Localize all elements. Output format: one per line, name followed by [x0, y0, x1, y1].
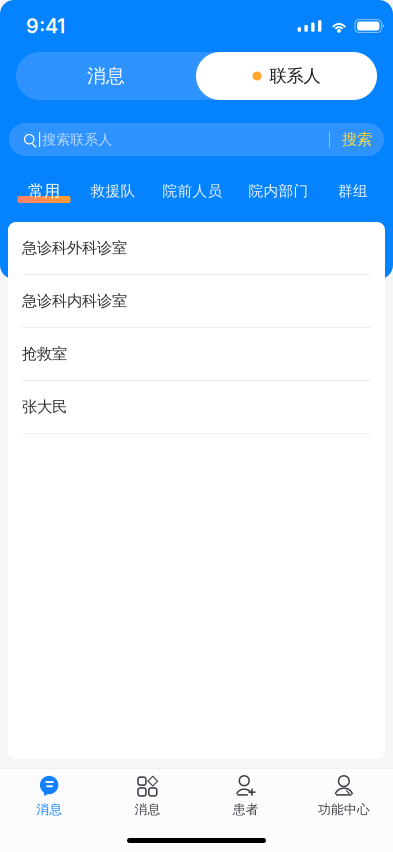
staticText: 联系人 [269, 65, 320, 87]
staticText: 张大民 [22, 397, 67, 417]
staticText: 消息 [134, 801, 160, 818]
button[interactable]: 院内部门 [235, 176, 322, 206]
staticText: 消息 [87, 64, 125, 88]
button[interactable]: 急诊科外科诊室 [8, 222, 385, 275]
staticText: 搜索联系人 [42, 131, 112, 148]
button[interactable]: 搜索 [330, 123, 384, 156]
button[interactable]: 患者 [196, 774, 295, 820]
button[interactable]: 消息 [0, 774, 98, 820]
button[interactable]: 功能中心 [295, 774, 393, 820]
button[interactable]: 张大民 [8, 381, 385, 434]
button[interactable]: 急诊科内科诊室 [8, 275, 385, 328]
button[interactable]: 救援队 [76, 176, 150, 206]
button[interactable]: 群组 [322, 176, 384, 206]
staticText: 常用 [28, 181, 60, 201]
button[interactable]: 联系人 [196, 52, 377, 100]
button[interactable]: 消息 [16, 52, 196, 100]
staticText: 急诊科内科诊室 [22, 291, 127, 311]
staticText: 急诊科外科诊室 [22, 238, 127, 258]
staticText: 患者 [233, 801, 259, 818]
button[interactable]: 常用 [12, 176, 76, 206]
staticText: 搜索 [342, 130, 372, 149]
button[interactable]: 抢救室 [8, 328, 385, 381]
staticText: 群组 [338, 182, 368, 200]
staticText: 院内部门 [248, 182, 308, 200]
button[interactable]: 院前人员 [150, 176, 235, 206]
staticText: 9:41 [26, 14, 65, 38]
staticText: 院前人员 [162, 182, 222, 200]
staticText: 消息 [36, 801, 62, 818]
button[interactable]: 消息 [98, 774, 196, 820]
staticText: 救援队 [90, 182, 135, 200]
staticText: 功能中心 [318, 801, 370, 818]
staticText: 抢救室 [22, 344, 67, 364]
